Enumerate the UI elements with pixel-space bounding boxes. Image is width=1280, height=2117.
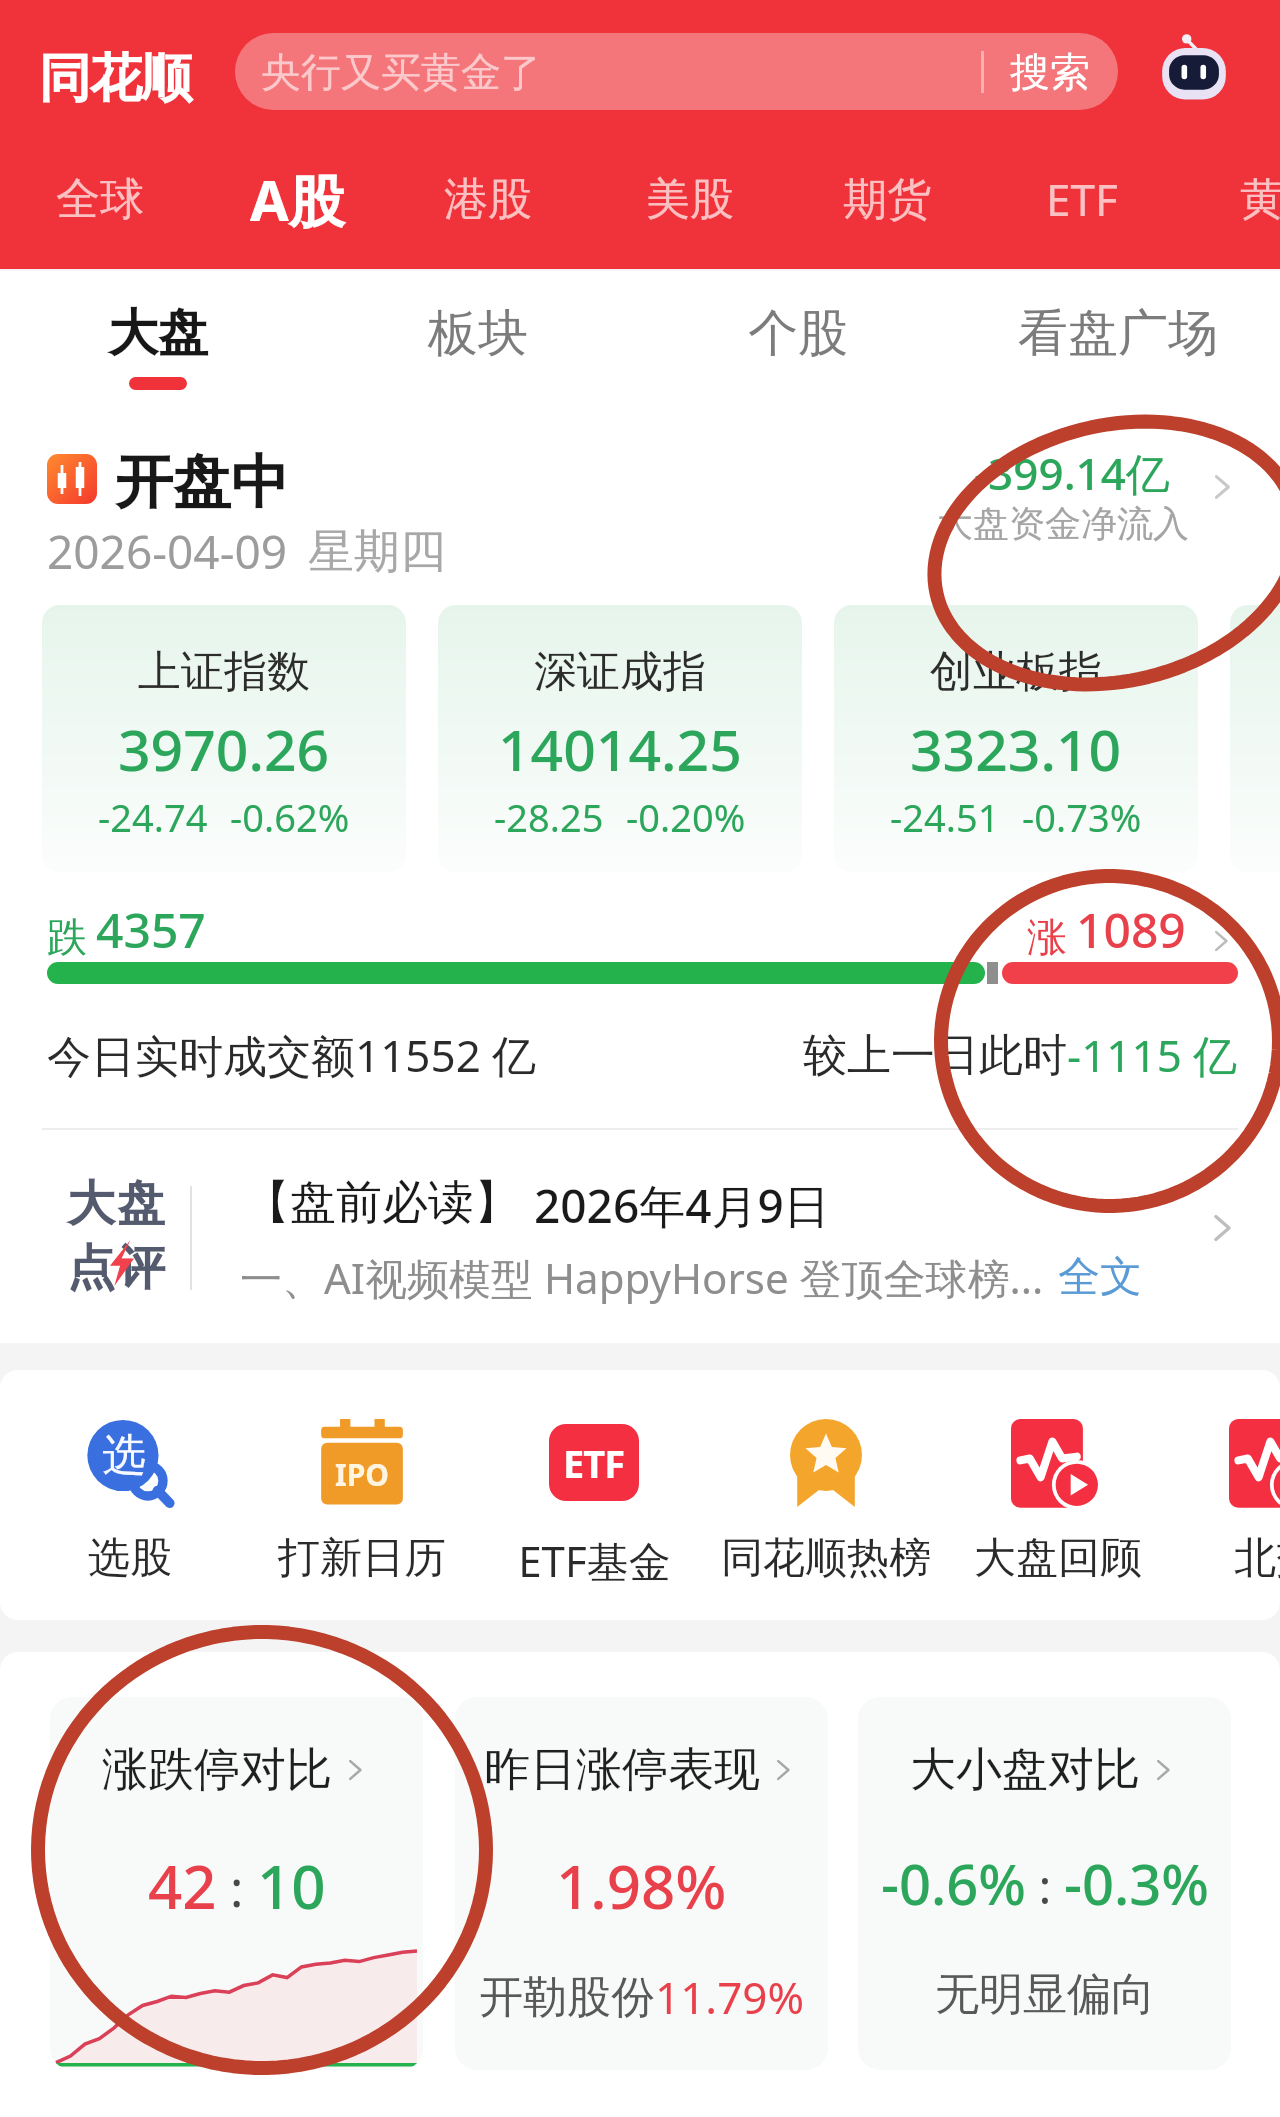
staticText: 14014.25 [498, 710, 742, 788]
staticText: 大盘回顾 [974, 1532, 1142, 1585]
button[interactable]: IPO [222, 1410, 502, 1590]
staticText: 无明显偏向 [935, 1967, 1155, 2022]
staticText: 个股 [748, 302, 848, 365]
staticText: 板块 [428, 302, 528, 365]
staticText: -0.62% [230, 791, 350, 843]
staticText: 大盘 [108, 302, 208, 365]
button[interactable]: 全球 [0, 156, 210, 242]
button[interactable]: A股 [187, 156, 407, 242]
staticText: 昨日涨停表现 [484, 1741, 760, 1799]
staticText: ETF [563, 1437, 625, 1489]
button[interactable]: 个股 [658, 290, 938, 405]
button[interactable]: -399.14亿 [930, 443, 1240, 553]
staticText: ETF基金 [518, 1532, 671, 1589]
staticText: A股 [250, 161, 345, 237]
staticText: -1115 亿 [1067, 1025, 1238, 1085]
button[interactable]: 板块 [338, 290, 618, 405]
button[interactable]: 上证指数 [42, 605, 406, 872]
staticText: 【盘前必读】 [244, 1174, 520, 1232]
button[interactable]: 涨跌停对比 [50, 1697, 423, 2070]
staticText: 涨 [1027, 912, 1067, 962]
staticText: 全文 [1058, 1251, 1142, 1304]
staticText: : [217, 1854, 257, 1922]
button[interactable]: Open market commentary [1190, 1196, 1254, 1260]
staticText: 看盘广场 [1018, 302, 1218, 365]
button[interactable]: ETF [972, 156, 1192, 242]
staticText: 大盘资金净流入 [937, 501, 1189, 546]
staticText: -399.14亿 [974, 443, 1170, 503]
staticText: 打新日历 [278, 1532, 446, 1585]
staticText: -0.6% [881, 1845, 1026, 1921]
button[interactable]: 央行又买黄金了 [235, 33, 1118, 110]
staticText: 港股 [444, 172, 532, 227]
staticText: 北交 [1234, 1532, 1280, 1585]
staticText: 创业板指 [930, 645, 1102, 699]
staticText: 选 [102, 1428, 146, 1483]
button[interactable]: AI assistant [1148, 26, 1240, 118]
staticText: 大盘 [66, 1174, 166, 1234]
button[interactable]: 黄 [1152, 156, 1280, 242]
button[interactable]: 港股 [378, 156, 598, 242]
staticText: 美股 [646, 172, 734, 227]
button[interactable]: 北交 [1136, 1410, 1280, 1590]
button[interactable]: 大盘回顾 [918, 1410, 1198, 1590]
button[interactable]: 同花顺热榜 [686, 1410, 966, 1590]
staticText: 跌 [47, 912, 87, 962]
staticText: 3970.26 [118, 710, 330, 788]
button[interactable]: 【盘前必读】 [244, 1174, 830, 1237]
button[interactable]: 美股 [580, 156, 800, 242]
staticText: 同花顺热榜 [721, 1532, 931, 1585]
staticText: 黄 [1240, 172, 1280, 227]
staticText: 1089 [1076, 897, 1186, 962]
staticText: -0.20% [626, 791, 746, 843]
button[interactable]: ETF [454, 1410, 734, 1590]
staticText: 星期四 [308, 523, 446, 581]
staticText: 深证成指 [534, 645, 706, 699]
button[interactable]: 选 [0, 1410, 270, 1590]
staticText: : [1026, 1853, 1064, 1918]
staticText: 上证指数 [138, 645, 310, 699]
staticText: 开勒股份 [479, 1970, 655, 2025]
staticText: 涨跌停对比 [102, 1741, 332, 1799]
button[interactable]: 同花顺 [39, 38, 192, 108]
staticText: 一、AI视频模型 HappyHorse 登顶全球榜... [240, 1249, 1044, 1306]
button[interactable]: 昨日涨停表现 [455, 1697, 828, 2070]
staticText: 2026年4月9日 [534, 1174, 830, 1237]
staticText: IPO [335, 1454, 390, 1495]
button[interactable]: 看盘广场 [978, 290, 1258, 405]
staticText: 同花顺 [39, 46, 192, 112]
staticText: 大小盘对比 [910, 1741, 1140, 1799]
staticText: 10 [257, 1845, 326, 1927]
button[interactable]: 大盘 [18, 290, 298, 405]
staticText: 1.98% [556, 1845, 727, 1927]
staticText: 开盘中 [115, 446, 289, 519]
staticText: 4357 [96, 897, 206, 962]
staticText: 期货 [843, 172, 931, 227]
staticText: -0.73% [1022, 791, 1142, 843]
button[interactable]: 跌 [47, 897, 206, 962]
staticText: 今日实时成交额11552 亿 [47, 1025, 537, 1085]
button[interactable]: 创业板指 [834, 605, 1198, 872]
button[interactable]: 深证成指 [438, 605, 802, 872]
staticText: -24.74 [98, 791, 208, 843]
staticText: 选股 [88, 1532, 172, 1585]
staticText: -24.51 [890, 791, 1000, 843]
staticText: 11.79% [655, 1967, 805, 2027]
staticText: 搜索 [1010, 47, 1090, 97]
staticText: -0.3% [1064, 1845, 1209, 1921]
button[interactable]: 期货 [777, 156, 997, 242]
staticText: ETF [1046, 169, 1118, 229]
staticText: 较上一日此时 [803, 1028, 1067, 1083]
staticText: 3323.10 [910, 710, 1122, 788]
staticText: 全球 [56, 172, 144, 227]
button[interactable]: 大小盘对比 [858, 1697, 1231, 2070]
staticText: 央行又买黄金了 [261, 47, 541, 97]
staticText: 点评 [66, 1238, 166, 1298]
staticText: -28.25 [494, 791, 604, 843]
staticText: 2026-04-09 [47, 520, 288, 583]
button[interactable]: 涨 [1027, 897, 1238, 962]
staticText: 42 [148, 1845, 217, 1927]
